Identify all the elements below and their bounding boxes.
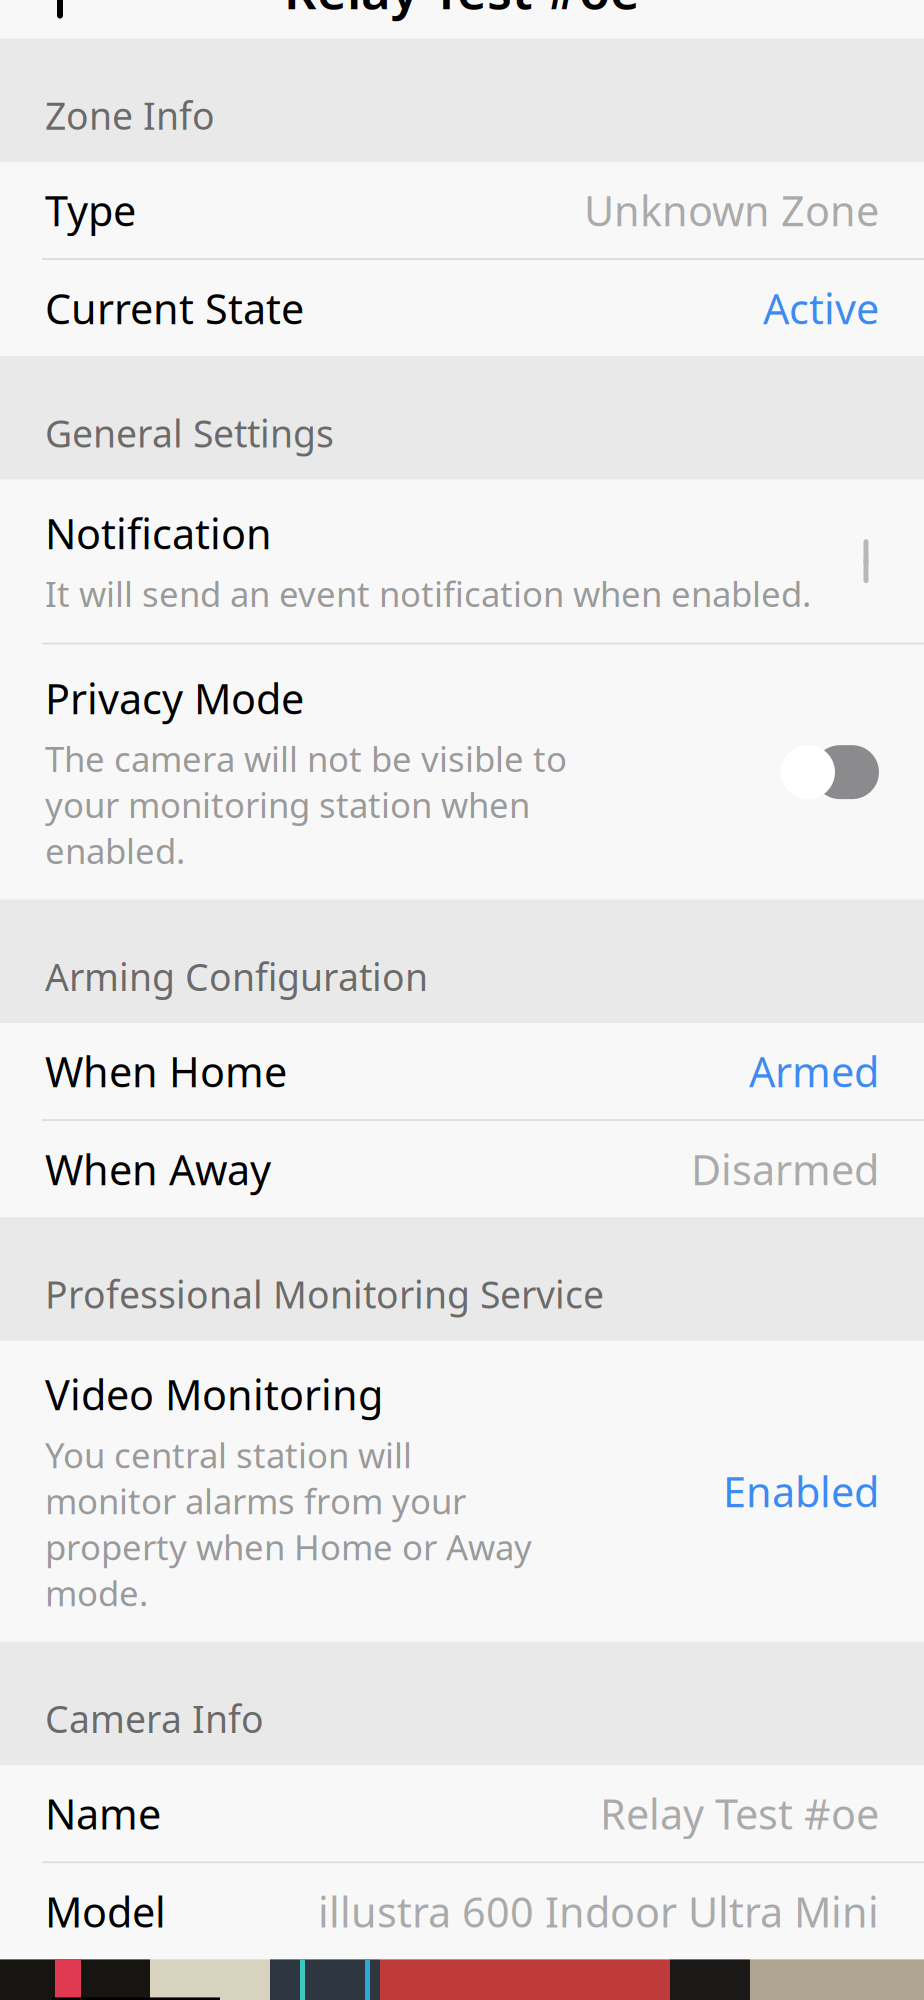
staticText: Disarmed bbox=[691, 1142, 879, 1197]
staticText: Model bbox=[45, 1884, 166, 1939]
staticText: Name bbox=[45, 1786, 161, 1841]
staticText: Zone Info bbox=[45, 91, 215, 140]
staticText: Notification bbox=[45, 506, 272, 561]
staticText: Privacy Mode bbox=[45, 671, 304, 726]
staticText: Active bbox=[763, 281, 879, 336]
staticText: Current State bbox=[45, 281, 304, 336]
staticText: Relay Test #oe bbox=[600, 1786, 879, 1841]
staticText: Type bbox=[45, 183, 136, 238]
button[interactable]: Type bbox=[0, 162, 924, 258]
staticText: When Home bbox=[45, 1044, 287, 1099]
staticText: Video Monitoring bbox=[45, 1367, 383, 1422]
staticText: When Away bbox=[45, 1142, 271, 1197]
staticText: 2000/03/08 bbox=[56, 1997, 216, 2000]
staticText: Professional Monitoring Service bbox=[45, 1269, 604, 1319]
button[interactable]: Privacy Mode bbox=[781, 745, 879, 799]
button[interactable]: Current State bbox=[0, 260, 924, 356]
staticText: You central station will monitor alarms … bbox=[45, 1432, 532, 1616]
button[interactable]: Back bbox=[20, 0, 100, 30]
staticText: Enabled bbox=[723, 1464, 879, 1519]
button[interactable]: Model bbox=[0, 1863, 924, 1959]
staticText: Relay Test #oe bbox=[284, 0, 640, 23]
staticText: Arming Configuration bbox=[45, 952, 428, 1001]
button[interactable]: Notification bbox=[0, 480, 924, 643]
staticText: Camera Info bbox=[45, 1694, 264, 1743]
staticText: Unknown Zone bbox=[584, 183, 879, 238]
button[interactable]: Video Monitoring bbox=[0, 1341, 924, 1642]
staticText: The camera will not be visible to your m… bbox=[45, 735, 567, 874]
staticText: General Settings bbox=[45, 408, 334, 458]
button[interactable]: Name bbox=[0, 1765, 924, 1861]
staticText: illustra 600 Indoor Ultra Mini bbox=[318, 1884, 879, 1939]
staticText: Armed bbox=[749, 1044, 879, 1099]
staticText: It will send an event notification when … bbox=[45, 571, 811, 617]
button[interactable]: When Home bbox=[0, 1023, 924, 1119]
button[interactable]: When Away bbox=[0, 1121, 924, 1217]
